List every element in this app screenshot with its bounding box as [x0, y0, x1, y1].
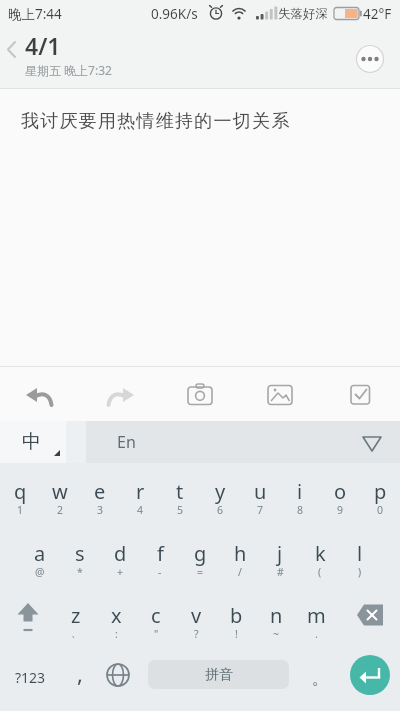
button[interactable]: z: [56, 587, 96, 649]
staticText: *: [77, 565, 83, 579]
staticText: 星期五 晚上7:32: [25, 62, 112, 78]
staticText: 2: [57, 503, 64, 517]
button[interactable]: q: [0, 463, 40, 525]
button[interactable]: s: [60, 525, 100, 587]
staticText: (: [318, 565, 322, 579]
staticText: :: [115, 627, 118, 641]
button[interactable]: t: [160, 463, 200, 525]
button[interactable]: k: [300, 525, 340, 587]
staticText: j: [277, 540, 283, 567]
staticText: 4: [137, 503, 144, 517]
staticText: i: [297, 478, 303, 505]
staticText: c: [151, 602, 161, 629]
button[interactable]: [4, 587, 52, 649]
button[interactable]: [160, 367, 240, 421]
staticText: t: [176, 478, 184, 505]
staticText: g: [194, 540, 207, 567]
staticText: o: [334, 478, 347, 505]
button[interactable]: w: [40, 463, 80, 525]
button[interactable]: [0, 30, 24, 70]
staticText: /: [238, 565, 242, 579]
staticText: s: [75, 540, 85, 567]
staticText: p: [374, 478, 387, 505]
button[interactable]: x: [96, 587, 136, 649]
button[interactable]: d: [100, 525, 140, 587]
staticText: +: [117, 565, 124, 579]
staticText: 6: [217, 503, 224, 517]
button[interactable]: 中: [0, 421, 66, 463]
button[interactable]: v: [176, 587, 216, 649]
staticText: k: [315, 540, 326, 567]
staticText: z: [71, 602, 81, 629]
button[interactable]: [356, 45, 384, 73]
staticText: h: [234, 540, 247, 567]
button[interactable]: l: [340, 525, 380, 587]
button[interactable]: n: [256, 587, 296, 649]
staticText: @: [35, 565, 45, 579]
staticText: 8: [297, 503, 304, 517]
staticText: ?123: [15, 668, 46, 687]
button[interactable]: 拼音: [148, 660, 289, 689]
staticText: u: [254, 478, 267, 505]
staticText: En: [117, 431, 136, 453]
button[interactable]: [352, 421, 392, 463]
button[interactable]: 。: [302, 649, 338, 711]
button[interactable]: b: [216, 587, 256, 649]
staticText: 中: [22, 430, 41, 454]
button[interactable]: u: [240, 463, 280, 525]
button[interactable]: c: [136, 587, 176, 649]
button[interactable]: [80, 367, 160, 421]
button[interactable]: ?123: [6, 649, 54, 711]
staticText: ,: [77, 658, 83, 688]
button[interactable]: [320, 367, 400, 421]
staticText: 5: [177, 503, 184, 517]
staticText: y: [215, 478, 226, 505]
staticText: ): [358, 565, 362, 579]
staticText: w: [52, 478, 68, 505]
staticText: m: [307, 602, 326, 629]
staticText: 0: [377, 503, 384, 517]
staticText: v: [191, 602, 202, 629]
staticText: 9: [337, 503, 344, 517]
staticText: 4/1: [25, 30, 61, 61]
button[interactable]: ,: [62, 649, 98, 711]
staticText: =: [197, 565, 204, 579]
staticText: d: [114, 540, 127, 567]
staticText: 我讨厌要用热情维持的一切关系: [21, 110, 291, 133]
staticText: n: [270, 602, 283, 629]
button[interactable]: En: [86, 421, 166, 463]
staticText: ?: [194, 627, 199, 641]
button[interactable]: m: [296, 587, 336, 649]
staticText: ~: [273, 627, 280, 641]
button[interactable]: j: [260, 525, 300, 587]
staticText: x: [111, 602, 122, 629]
button[interactable]: h: [220, 525, 260, 587]
button[interactable]: [350, 655, 390, 695]
staticText: a: [34, 540, 46, 567]
staticText: q: [14, 478, 27, 505]
staticText: e: [94, 478, 106, 505]
button[interactable]: e: [80, 463, 120, 525]
button[interactable]: [240, 367, 320, 421]
button[interactable]: [0, 367, 80, 421]
button[interactable]: r: [120, 463, 160, 525]
staticText: r: [136, 478, 145, 505]
staticText: 拼音: [205, 666, 233, 684]
button[interactable]: a: [20, 525, 60, 587]
button[interactable]: o: [320, 463, 360, 525]
button[interactable]: f: [140, 525, 180, 587]
staticText: !: [235, 627, 238, 641]
staticText: 、: [71, 627, 82, 640]
staticText: 。: [312, 669, 328, 689]
staticText: #: [277, 565, 284, 579]
staticText: ": [154, 627, 159, 641]
staticText: -: [158, 565, 162, 579]
staticText: 晚上7:44: [8, 5, 62, 23]
button[interactable]: g: [180, 525, 220, 587]
staticText: 0.96K/s: [151, 5, 198, 23]
button[interactable]: [346, 587, 396, 649]
button[interactable]: p: [360, 463, 400, 525]
button[interactable]: y: [200, 463, 240, 525]
button[interactable]: [98, 649, 138, 711]
button[interactable]: i: [280, 463, 320, 525]
